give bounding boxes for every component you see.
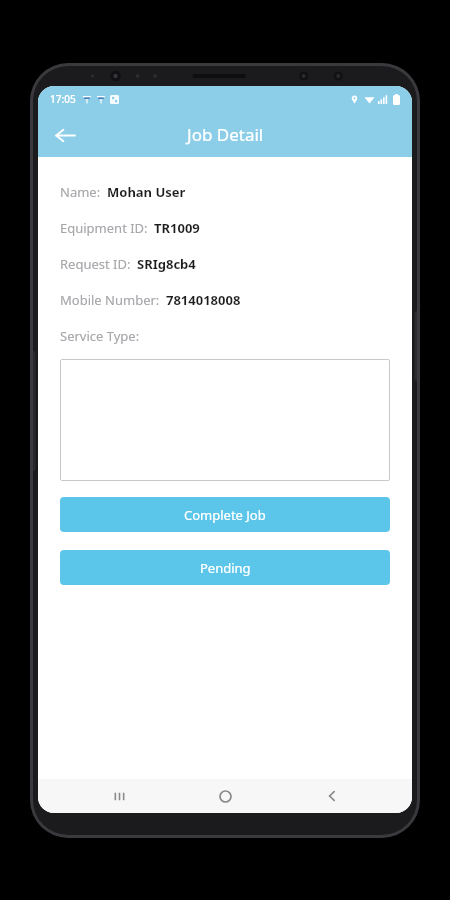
staticText: 17:05	[50, 92, 76, 106]
staticText: Mobile Number:	[60, 291, 160, 309]
button[interactable]: Back	[44, 114, 86, 156]
staticText: Service Type:	[60, 327, 140, 345]
staticText: Request ID:	[60, 255, 131, 273]
staticText: Equipment ID:	[60, 219, 148, 237]
button[interactable]: Recent apps	[93, 779, 145, 813]
button[interactable]: Pending	[60, 550, 390, 585]
button[interactable]: Complete Job	[60, 497, 390, 532]
staticText: Pending	[200, 559, 251, 577]
staticText: SRIg8cb4	[137, 255, 196, 273]
button[interactable]: Back	[306, 779, 358, 813]
staticText: Name:	[60, 183, 101, 201]
button[interactable]	[60, 359, 390, 481]
staticText: TR1009	[154, 219, 200, 237]
staticText: 7814018008	[166, 291, 241, 309]
staticText: Job Detail	[187, 123, 264, 146]
button[interactable]: Home	[199, 779, 251, 813]
staticText: Complete Job	[184, 506, 266, 524]
staticText: Mohan User	[107, 183, 186, 201]
